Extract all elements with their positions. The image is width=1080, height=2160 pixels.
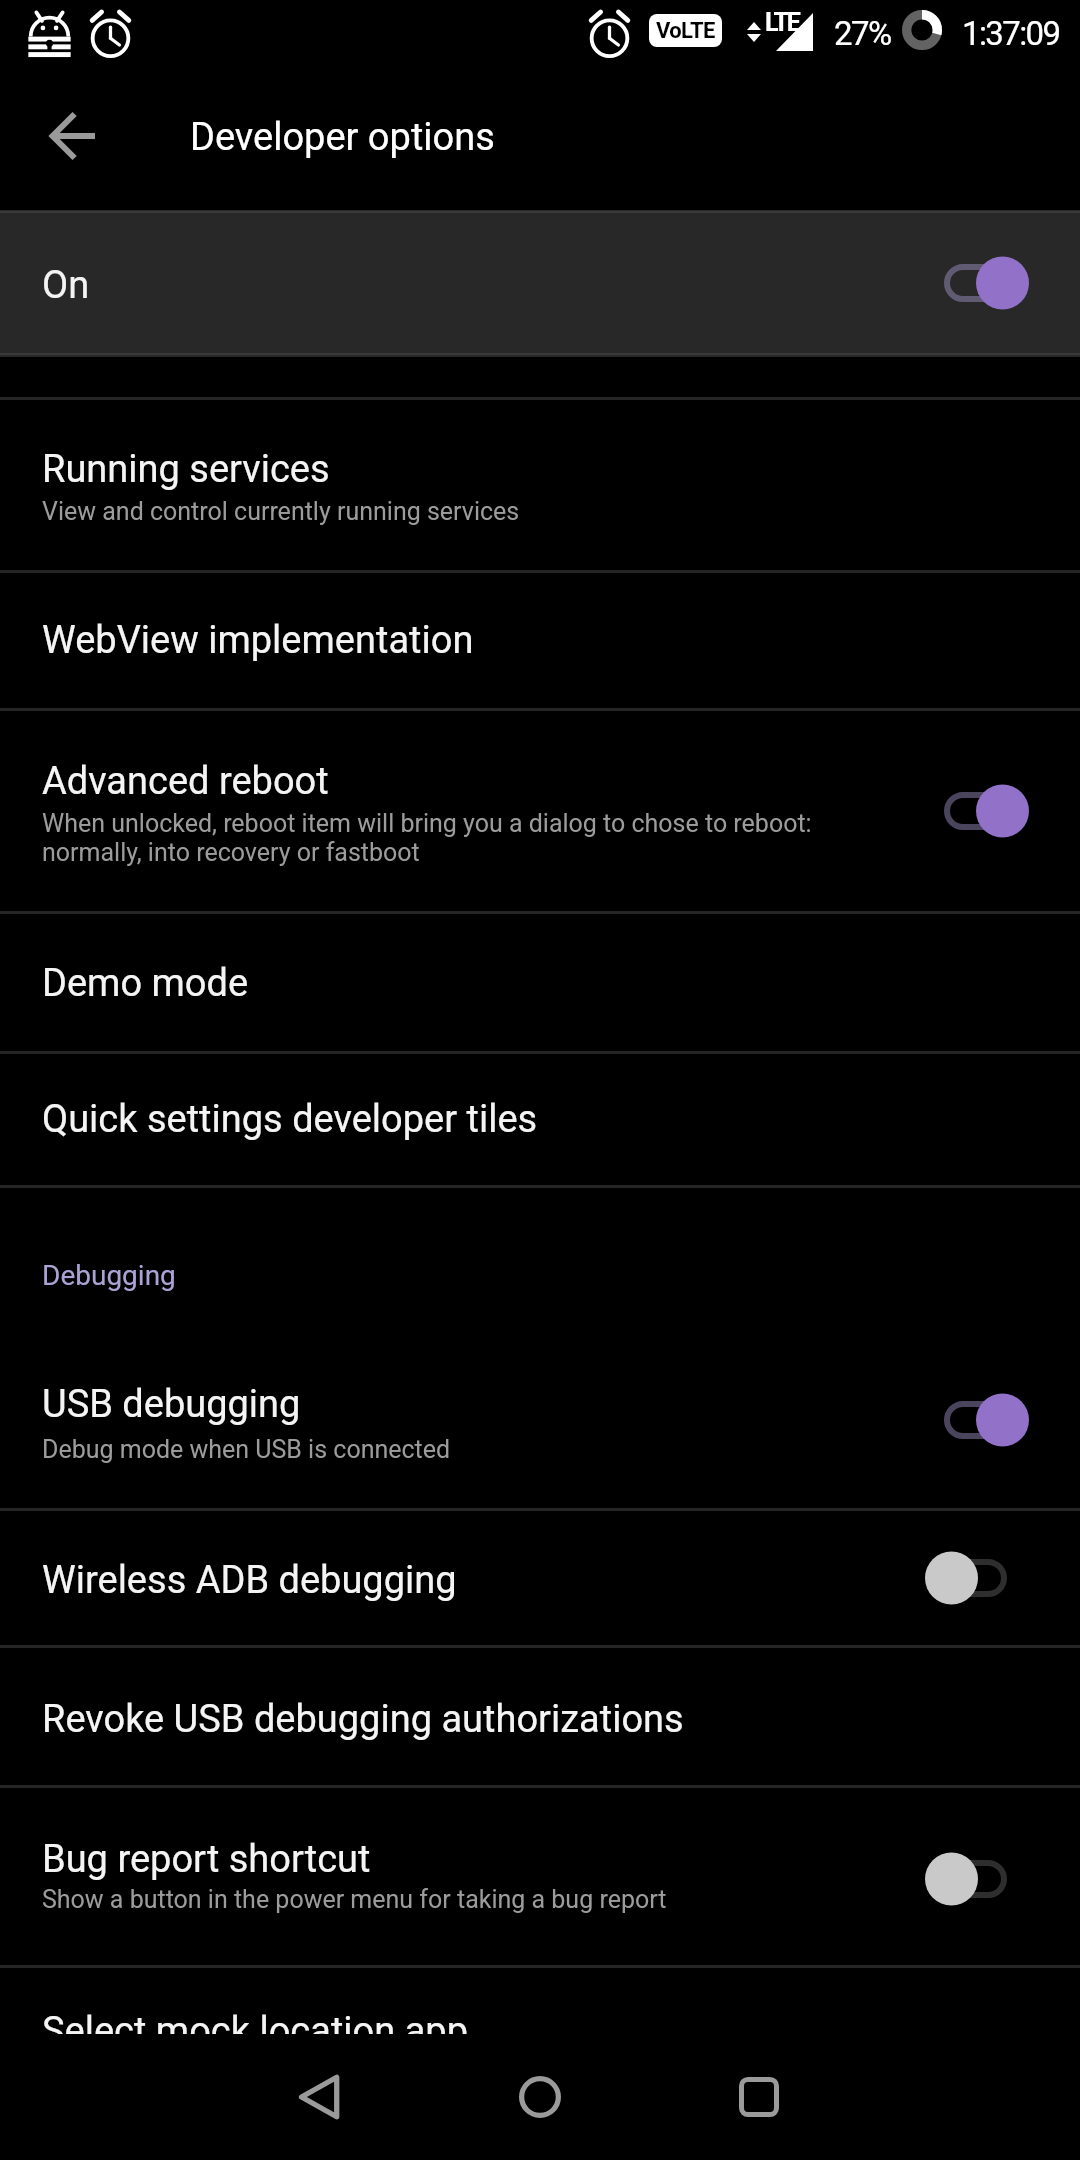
- button[interactable]: USB debugging: [0, 1343, 1080, 1508]
- staticText: USB debugging: [42, 1382, 301, 1427]
- staticText: 27%: [834, 14, 891, 53]
- staticText: Demo mode: [42, 961, 249, 1006]
- staticText: Quick settings developer tiles: [42, 1097, 538, 1142]
- staticText: Debugging: [42, 1259, 176, 1292]
- staticText: When unlocked, reboot item will bring yo…: [42, 809, 812, 838]
- button[interactable]: Home: [480, 2034, 600, 2160]
- staticText: LTE: [765, 8, 799, 37]
- button[interactable]: Revoke USB debugging authorizations: [0, 1648, 1080, 1785]
- staticText: Running services: [42, 447, 330, 492]
- button[interactable]: Running services: [0, 400, 1080, 570]
- button[interactable]: WebView implementation: [0, 573, 1080, 708]
- button[interactable]: Bug report shortcut: [0, 1788, 1080, 1965]
- staticText: Debug mode when USB is connected: [42, 1435, 451, 1464]
- staticText: Select mock location app: [42, 2009, 468, 2034]
- staticText: 1:37:09: [962, 14, 1060, 53]
- button[interactable]: Switch off: [925, 1548, 1029, 1608]
- staticText: Developer options: [190, 115, 495, 160]
- button[interactable]: Switch on: [925, 781, 1029, 841]
- staticText: WebView implementation: [42, 618, 474, 663]
- button[interactable]: Switch on: [925, 253, 1029, 313]
- staticText: Show a button in the power menu for taki…: [42, 1885, 667, 1914]
- staticText: Advanced reboot: [42, 759, 329, 804]
- button[interactable]: Switch on: [925, 1390, 1029, 1450]
- staticText: VoLTE: [656, 18, 715, 44]
- staticText: Revoke USB debugging authorizations: [42, 1697, 684, 1742]
- button[interactable]: Back: [32, 92, 116, 176]
- button[interactable]: On: [0, 210, 1080, 357]
- button[interactable]: Switch off: [925, 1849, 1029, 1909]
- button[interactable]: Select mock location app: [0, 1968, 1080, 2034]
- staticText: On: [42, 263, 90, 308]
- button[interactable]: Wireless ADB debugging: [0, 1511, 1080, 1645]
- staticText: normally, into recovery or fastboot: [42, 838, 420, 867]
- button[interactable]: Recents: [699, 2034, 819, 2160]
- button[interactable]: Quick settings developer tiles: [0, 1054, 1080, 1185]
- staticText: Wireless ADB debugging: [42, 1558, 457, 1603]
- staticText: View and control currently running servi…: [42, 497, 520, 526]
- staticText: Bug report shortcut: [42, 1837, 371, 1882]
- button[interactable]: Demo mode: [0, 914, 1080, 1051]
- button[interactable]: Back: [260, 2034, 380, 2160]
- button[interactable]: Advanced reboot: [0, 711, 1080, 911]
